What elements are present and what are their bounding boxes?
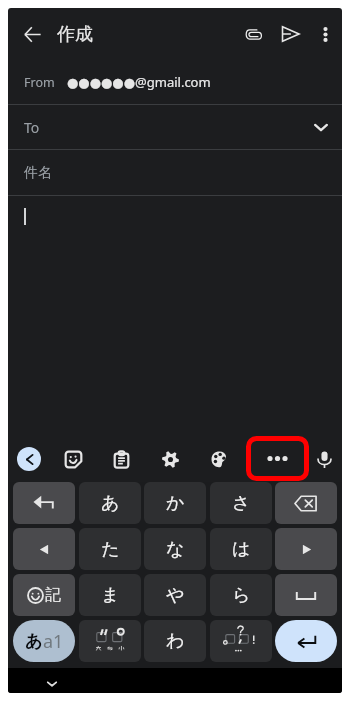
staticText: あ — [25, 631, 43, 652]
button[interactable]: あ — [79, 482, 141, 524]
button[interactable] — [13, 528, 75, 570]
button[interactable]: 記 — [13, 574, 75, 616]
button[interactable]: Keyboard settings — [152, 443, 188, 475]
staticText: From — [24, 74, 55, 91]
button[interactable]: は — [210, 528, 272, 570]
staticText: な — [166, 538, 185, 561]
button[interactable]: Attach file — [234, 8, 272, 60]
button[interactable]: Collapse toolbar — [17, 447, 41, 471]
button[interactable]: た — [79, 528, 141, 570]
button[interactable] — [79, 620, 141, 662]
staticText: あ — [101, 492, 120, 515]
staticText: か — [166, 492, 185, 515]
button[interactable]: あ — [13, 620, 75, 662]
staticText: ま — [101, 584, 120, 607]
button[interactable]: Voice input — [306, 443, 342, 475]
button[interactable]: From — [8, 60, 342, 104]
button[interactable]: か — [144, 482, 206, 524]
staticText: た — [101, 538, 120, 561]
button[interactable]: Clipboard — [103, 443, 139, 475]
button[interactable]: More keyboard options — [246, 436, 309, 481]
button[interactable]: Stickers — [55, 443, 91, 475]
button[interactable]: More options — [308, 8, 342, 60]
button[interactable]: Back — [9, 8, 55, 60]
button[interactable]: や — [144, 574, 206, 616]
staticText: や — [166, 584, 185, 607]
staticText: 件名 — [24, 164, 52, 182]
button[interactable]: Send — [272, 8, 308, 60]
button[interactable] — [275, 482, 337, 524]
button[interactable]: Hide keyboard — [34, 674, 70, 693]
staticText: a1 — [43, 629, 64, 654]
button[interactable]: さ — [210, 482, 272, 524]
staticText: To — [24, 118, 40, 137]
button[interactable]: ま — [79, 574, 141, 616]
button[interactable] — [275, 620, 337, 662]
button[interactable]: ら — [210, 574, 272, 616]
staticText: ら — [232, 584, 251, 607]
staticText: 記 — [45, 585, 61, 605]
staticText: 作成 — [57, 23, 93, 46]
button[interactable]: わ — [144, 620, 206, 662]
button[interactable]: な — [144, 528, 206, 570]
button[interactable] — [13, 482, 75, 524]
staticText: さ — [232, 492, 251, 515]
button[interactable]: To — [8, 105, 342, 149]
staticText: わ — [166, 630, 185, 653]
button[interactable] — [275, 528, 337, 570]
staticText: ●●●●●●@gmail.com — [67, 73, 211, 91]
staticText: は — [232, 538, 251, 561]
button[interactable]: 件名 — [8, 150, 342, 195]
button[interactable] — [210, 620, 272, 662]
button[interactable]: Theme — [201, 443, 237, 475]
button[interactable] — [275, 574, 337, 616]
button[interactable] — [8, 196, 342, 418]
